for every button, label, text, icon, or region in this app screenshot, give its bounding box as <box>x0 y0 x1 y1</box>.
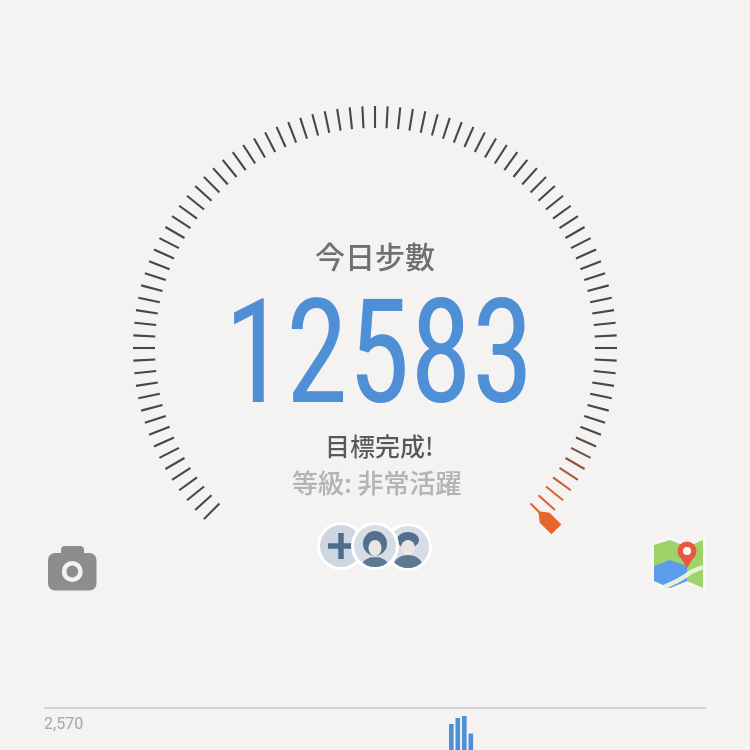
staticText: 12583 <box>224 267 534 437</box>
staticText: 2,570 <box>44 714 84 733</box>
staticText: 今日步數 <box>315 233 435 276</box>
button[interactable] <box>648 530 710 592</box>
button[interactable] <box>315 520 433 573</box>
staticText: 等級: 非常活躍 <box>292 463 462 501</box>
staticText: 目標完成! <box>325 427 434 463</box>
button[interactable] <box>38 536 106 600</box>
